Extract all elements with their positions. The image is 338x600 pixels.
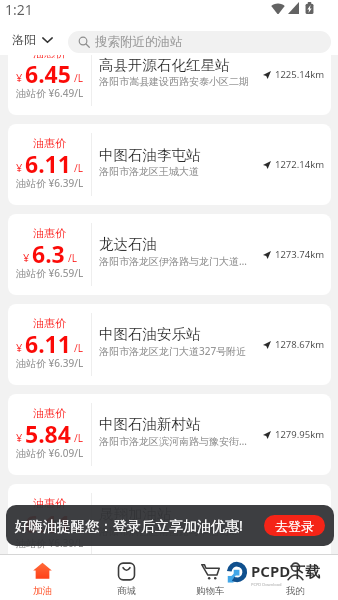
staticText: 6.45 — [25, 58, 71, 89]
button[interactable]: 油惠价 — [8, 214, 331, 295]
staticText: /L — [74, 341, 83, 355]
staticText: ¥ — [16, 340, 23, 355]
staticText: 油站价 ¥6.39/L — [16, 356, 84, 370]
staticText: 6.11 — [25, 328, 71, 359]
staticText: 商城 — [117, 585, 136, 597]
staticText: 龙达石油 — [99, 235, 157, 253]
staticText: 去登录 — [275, 518, 314, 534]
button[interactable]: 油惠价 — [8, 304, 331, 385]
staticText: 油惠价 — [33, 55, 66, 60]
staticText: 1225.14km — [275, 68, 325, 81]
staticText: /L — [74, 161, 83, 175]
button[interactable]: 去登录 — [264, 515, 325, 536]
staticText: 6.3 — [32, 238, 65, 269]
staticText: 油站价 ¥6.09/L — [16, 446, 84, 460]
staticText: 洛阳市涧西区南昌路与辛店街… — [99, 524, 237, 538]
staticText: 1273.74km — [275, 248, 325, 261]
staticText: ¥ — [16, 430, 23, 445]
staticText: PCPD Download — [251, 582, 282, 587]
staticText: 1281.20km — [275, 518, 325, 531]
button[interactable]: 油惠价 — [8, 124, 331, 205]
staticText: 油惠价 — [33, 136, 66, 150]
staticText: 洛阳市洛龙区王城大道 — [99, 165, 199, 178]
button[interactable]: 好嗨油提醒您：登录后立享加油优惠! — [6, 505, 334, 546]
staticText: 油站价 ¥6.49/L — [16, 86, 84, 100]
staticText: /L — [74, 521, 83, 535]
staticText: 油站价 ¥6.39/L — [16, 176, 84, 190]
staticText: ¥ — [23, 250, 30, 265]
staticText: 油惠价 — [33, 496, 66, 510]
staticText: ¥ — [16, 70, 23, 85]
button[interactable]: 油惠价 — [8, 55, 331, 115]
staticText: 1278.67km — [275, 338, 325, 351]
button[interactable]: 加油 — [0, 555, 84, 600]
staticText: 油惠价 — [33, 226, 66, 240]
staticText: 6.11 — [25, 148, 71, 179]
staticText: 我的 — [286, 585, 305, 597]
button[interactable]: 商城 — [84, 555, 168, 600]
staticText: 油站价 ¥6.39/L — [16, 536, 84, 550]
staticText: 搜索附近的油站 — [95, 34, 183, 50]
staticText: 购物车 — [196, 585, 225, 597]
staticText: /L — [68, 251, 77, 265]
staticText: PCPD下载 — [251, 561, 321, 581]
staticText: ¥ — [16, 520, 23, 535]
staticText: 油惠价 — [33, 406, 66, 420]
staticText: /L — [74, 71, 83, 85]
staticText: 洛阳市洛龙区滨河南路与豫安街… — [99, 434, 247, 448]
button[interactable]: 购物车 — [168, 555, 253, 600]
staticText: 好嗨油提醒您：登录后立享加油优惠! — [15, 516, 243, 535]
staticText: 6.11 — [25, 508, 71, 539]
staticText: 洛阳 — [12, 32, 36, 47]
staticText: 洛阳市洛龙区伊洛路与龙门大道… — [99, 254, 247, 268]
staticText: 油站价 ¥6.59/L — [16, 266, 84, 280]
staticText: 洛阳市嵩县建设西路安泰小区二期 — [99, 75, 249, 88]
staticText: 1:21 — [5, 0, 33, 19]
staticText: 5.84 — [25, 418, 71, 449]
button[interactable]: 搜索附近的油站 — [68, 31, 331, 53]
button[interactable]: 洛阳 — [0, 32, 61, 47]
staticText: 中图石油李屯站 — [99, 146, 201, 164]
staticText: 洛阳市洛龙区龙门大道327号附近 — [99, 344, 247, 358]
button[interactable]: 油惠价 — [8, 484, 331, 554]
staticText: 高县开源石化红星站 — [99, 56, 230, 74]
staticText: 1279.95km — [275, 428, 325, 441]
staticText: 晟翔加油站 — [99, 505, 172, 523]
staticText: 中图石油安乐站 — [99, 325, 201, 343]
staticText: ¥ — [16, 160, 23, 175]
button[interactable]: 我的 — [253, 555, 338, 600]
button[interactable]: 油惠价 — [8, 394, 331, 475]
staticText: 加油 — [33, 585, 52, 597]
staticText: 1272.14km — [275, 158, 325, 171]
staticText: 油惠价 — [33, 316, 66, 330]
staticText: /L — [74, 431, 83, 445]
staticText: 中图石油新村站 — [99, 415, 201, 433]
